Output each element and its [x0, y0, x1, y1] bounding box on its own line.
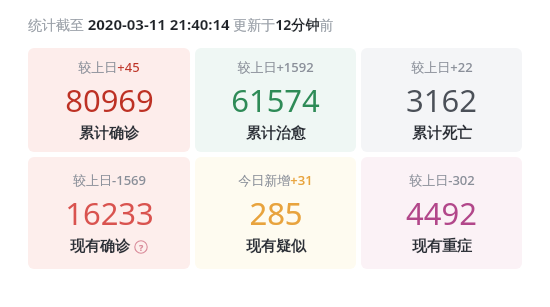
button[interactable]: 较上日+45	[28, 48, 190, 152]
button[interactable]: 较上日+22	[361, 48, 522, 152]
staticText: 累计确诊	[79, 124, 139, 143]
staticText: ?	[139, 241, 144, 253]
button[interactable]: Help about current confirmed	[134, 240, 148, 254]
staticText: 16233	[65, 192, 154, 234]
staticText: 较上日-1569	[73, 171, 146, 189]
button[interactable]: 较上日+1592	[195, 48, 356, 152]
staticText: 285	[249, 192, 303, 234]
staticText: 今日新增+31	[238, 171, 313, 189]
staticText: 较上日+1592	[237, 58, 314, 76]
staticText: 较上日-302	[409, 171, 475, 189]
staticText: 现有重症	[412, 237, 472, 256]
staticText: 80969	[65, 79, 154, 121]
button[interactable]: 较上日-302	[361, 157, 522, 269]
staticText: 累计治愈	[246, 124, 306, 143]
button[interactable]: 今日新增+31	[195, 157, 356, 269]
button[interactable]: 较上日-1569	[28, 157, 190, 269]
staticText: 累计死亡	[412, 124, 472, 143]
staticText: 61574	[231, 79, 320, 121]
staticText: 较上日+22	[411, 58, 473, 76]
staticText: 4492	[406, 192, 477, 234]
staticText: 较上日+45	[78, 58, 140, 76]
staticText: 现有疑似	[246, 237, 306, 256]
staticText: 统计截至 2020-03-11 21:40:14 更新于12分钟前	[28, 14, 334, 34]
staticText: 3162	[406, 79, 477, 121]
staticText: 现有确诊	[70, 237, 130, 256]
